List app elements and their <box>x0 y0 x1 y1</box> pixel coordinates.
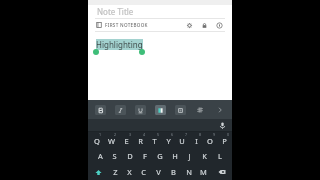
button[interactable]: M <box>196 164 211 180</box>
staticText: 2 <box>114 132 117 137</box>
staticText: Y <box>166 136 171 146</box>
button[interactable]: C <box>136 164 151 180</box>
button[interactable]: 9 <box>203 132 217 148</box>
staticText: O <box>207 136 213 146</box>
staticText: A <box>98 151 103 161</box>
staticText: U <box>179 136 185 146</box>
staticText: W <box>108 136 115 146</box>
staticText: D <box>127 151 133 161</box>
button[interactable]: Note Title <box>88 5 232 18</box>
button[interactable]: Bold <box>90 100 110 119</box>
button[interactable]: S <box>107 148 122 164</box>
button[interactable]: Underline <box>130 100 150 119</box>
staticText: C <box>141 167 146 177</box>
staticText: V <box>156 167 161 177</box>
staticText: N <box>186 167 192 177</box>
button[interactable]: Highlighting <box>88 32 232 100</box>
staticText: 0 <box>227 132 230 137</box>
button[interactable]: 4 <box>133 132 147 148</box>
button[interactable]: N <box>181 164 196 180</box>
button[interactable]: F <box>137 148 152 164</box>
staticText: K <box>202 151 207 161</box>
staticText: M <box>200 167 207 177</box>
button[interactable]: 3 <box>119 132 133 148</box>
staticText: E <box>124 136 129 146</box>
staticText: L <box>218 151 222 161</box>
staticText: Note Title <box>97 6 134 17</box>
staticText: F <box>143 151 147 161</box>
button[interactable]: X <box>122 164 136 180</box>
staticText: 4 <box>143 132 146 137</box>
staticText: S <box>112 151 117 161</box>
button[interactable]: Italic <box>110 100 130 119</box>
staticText: R <box>138 136 143 146</box>
staticText: X <box>127 167 132 177</box>
button[interactable]: 7 <box>175 132 189 148</box>
staticText: Z <box>113 167 118 177</box>
button[interactable]: 6 <box>161 132 175 148</box>
staticText: 1 <box>99 132 102 137</box>
button[interactable]: 8 <box>189 132 203 148</box>
button[interactable]: Text colour <box>170 100 190 119</box>
staticText: 8 <box>199 132 202 137</box>
staticText: Q <box>94 136 100 146</box>
button[interactable]: K <box>197 148 212 164</box>
button[interactable]: 5 <box>147 132 161 148</box>
staticText: Highlighting <box>96 39 143 50</box>
button[interactable]: A <box>93 148 107 164</box>
button[interactable]: Z <box>108 164 122 180</box>
staticText: H <box>172 151 178 161</box>
button[interactable]: Shift <box>88 164 108 180</box>
staticText: 6 <box>171 132 174 137</box>
staticText: G <box>157 151 163 161</box>
button[interactable]: J <box>182 148 197 164</box>
button[interactable]: 2 <box>104 132 119 148</box>
staticText: I <box>195 136 198 146</box>
staticText: 5 <box>157 132 160 137</box>
button[interactable]: V <box>151 164 166 180</box>
button[interactable]: L <box>212 148 227 164</box>
button[interactable]: More formatting options <box>210 100 230 119</box>
staticText: B <box>171 167 176 177</box>
button[interactable]: FIRST NOTEBOOK <box>96 22 148 28</box>
button[interactable]: B <box>166 164 181 180</box>
button[interactable]: H <box>167 148 182 164</box>
button[interactable]: Backspace <box>211 164 232 180</box>
staticText: J <box>188 151 191 161</box>
button[interactable]: Lock note <box>200 21 209 30</box>
staticText: 7 <box>185 132 188 137</box>
button[interactable]: Voice input <box>218 121 227 130</box>
button[interactable]: G <box>152 148 167 164</box>
staticText: 9 <box>213 132 216 137</box>
button[interactable]: Settings <box>185 21 194 30</box>
staticText: 3 <box>129 132 132 137</box>
button[interactable]: 1 <box>89 132 104 148</box>
staticText: P <box>222 136 227 146</box>
button[interactable]: D <box>122 148 137 164</box>
staticText: FIRST NOTEBOOK <box>105 22 148 28</box>
button[interactable]: Highlight <box>150 100 170 119</box>
staticText: T <box>152 136 157 146</box>
button[interactable]: Strikethrough <box>190 100 210 119</box>
button[interactable]: Note information <box>215 21 224 30</box>
button[interactable]: 0 <box>217 132 231 148</box>
